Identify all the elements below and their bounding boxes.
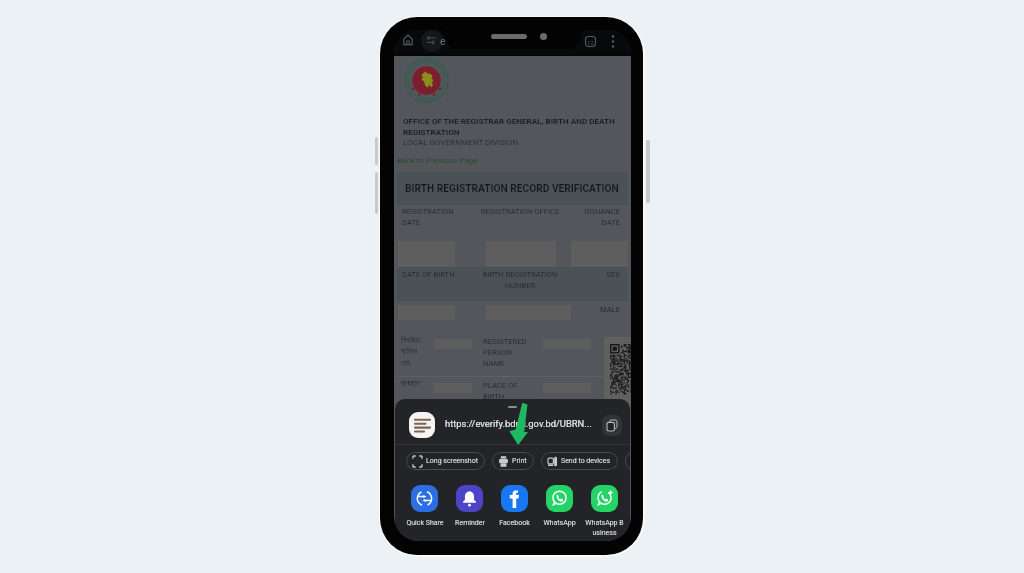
staticText: 12 <box>587 39 594 46</box>
staticText: REGISTRATION DATE <box>402 207 466 227</box>
staticText: https://everify.bdris.gov.bd/UBRN... <box>445 418 592 429</box>
staticText: ISSUANCE DATE <box>580 207 620 227</box>
staticText: REGISTRATION OFFICE <box>478 207 562 216</box>
staticText: Facebook <box>499 519 530 527</box>
staticText: WhatsApp B usiness <box>585 519 624 536</box>
button[interactable]: Home <box>403 34 413 45</box>
staticText: WhatsApp <box>543 519 576 527</box>
staticText: Print <box>512 457 527 465</box>
button[interactable]: More options <box>607 35 619 48</box>
staticText: BIRTH REGISTRATION NUMBER <box>478 270 562 290</box>
staticText: BIRTH REGISTRATION RECORD VERIFICATION <box>405 183 619 195</box>
staticText: LOCAL GOVERNMENT DIVISION <box>403 137 519 146</box>
button[interactable]: WhatsApp <box>537 485 582 527</box>
button[interactable]: Copy link <box>602 415 622 436</box>
staticText: Quick Share <box>406 519 444 527</box>
button[interactable]: Reminder <box>447 485 492 527</box>
staticText: SEX <box>580 270 620 279</box>
button[interactable]: Print <box>492 452 534 470</box>
staticText: জন্মস্থান <box>401 379 431 387</box>
staticText: e <box>440 35 446 47</box>
staticText: MALE <box>580 305 620 314</box>
button[interactable]: Quick Share <box>402 485 447 527</box>
button[interactable]: Tabs <box>585 36 596 47</box>
staticText: PLACE OF BIRTH <box>483 381 535 401</box>
button[interactable]: Edit <box>625 452 630 470</box>
button[interactable]: Long screenshot <box>406 452 485 470</box>
staticText: OFFICE OF THE REGISTRAR GENERAL, BIRTH A… <box>403 116 629 137</box>
staticText: REGISTERED PERSON NAME <box>483 337 535 368</box>
staticText: DATE OF BIRTH <box>402 270 455 279</box>
button[interactable]: Back to Previous Page <box>397 155 478 164</box>
button[interactable]: Send to devices <box>541 452 618 470</box>
button[interactable]: Site settings <box>427 36 436 44</box>
button[interactable]: Facebook <box>492 485 537 527</box>
button[interactable]: WhatsApp B usiness <box>582 485 627 536</box>
staticText: Reminder <box>455 519 485 527</box>
staticText: নিবন্ধিত ব্যক্তির নাম <box>401 335 428 368</box>
staticText: Long screenshot <box>426 457 478 465</box>
staticText: Send to devices <box>561 457 611 465</box>
